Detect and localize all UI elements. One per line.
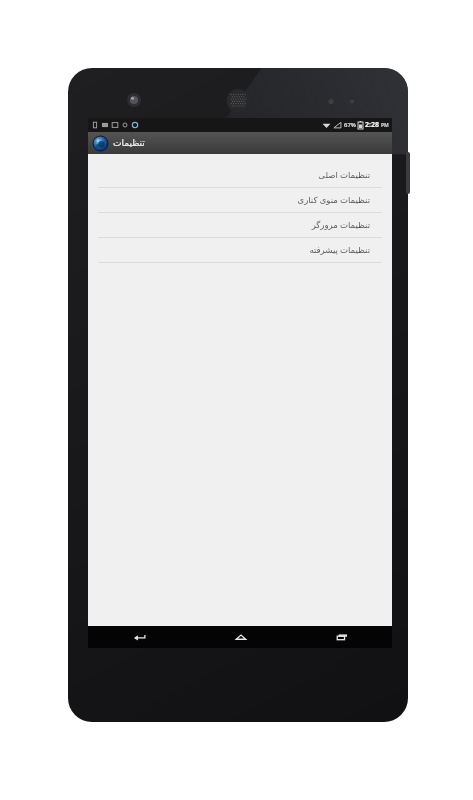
button[interactable]: تنظیمات مرورگر [88,213,392,238]
staticText: 2:28 [365,120,379,130]
staticText: PM [381,122,389,129]
button[interactable]: Home [190,626,291,648]
button[interactable]: تنظیمات پیشرفته [88,238,392,263]
staticText: تنظیمات پیشرفته [309,244,370,256]
button[interactable]: App icon [88,132,392,154]
staticText: 67% [344,121,356,129]
button[interactable]: تنظیمات منوی کناری [88,188,392,213]
staticText: تنظیمات مرورگر [311,219,370,231]
button[interactable]: Back [88,626,190,648]
button[interactable]: Recent apps [291,626,392,648]
staticText: تنظیمات منوی کناری [297,194,370,206]
button[interactable]: تنظیمات اصلی [88,163,392,188]
staticText: تنظیمات اصلی [318,169,370,181]
staticText: تنظیمات [113,138,145,148]
other: App icon [93,136,108,151]
